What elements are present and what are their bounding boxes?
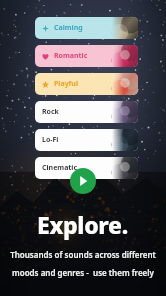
staticText: Lo-Fi xyxy=(42,135,59,145)
staticText: Explore. xyxy=(37,209,129,240)
staticText: Romantic xyxy=(54,51,88,61)
button[interactable]: Cinematic xyxy=(35,157,138,179)
staticText: Cinematic xyxy=(42,163,78,173)
button[interactable]: Romantic xyxy=(35,45,138,67)
staticText: Playful xyxy=(54,79,78,89)
staticText: Calming xyxy=(54,23,83,33)
button[interactable]: Rock xyxy=(35,101,138,123)
button[interactable]: Play xyxy=(70,168,96,194)
button[interactable]: Playful xyxy=(35,73,138,95)
staticText: Thousands of sounds across different xyxy=(10,249,156,260)
staticText: Rock xyxy=(42,107,59,117)
button[interactable]: Lo-Fi xyxy=(35,129,138,151)
staticText: moods and genres - use them freely xyxy=(12,267,154,278)
button[interactable]: Calming xyxy=(35,17,138,39)
